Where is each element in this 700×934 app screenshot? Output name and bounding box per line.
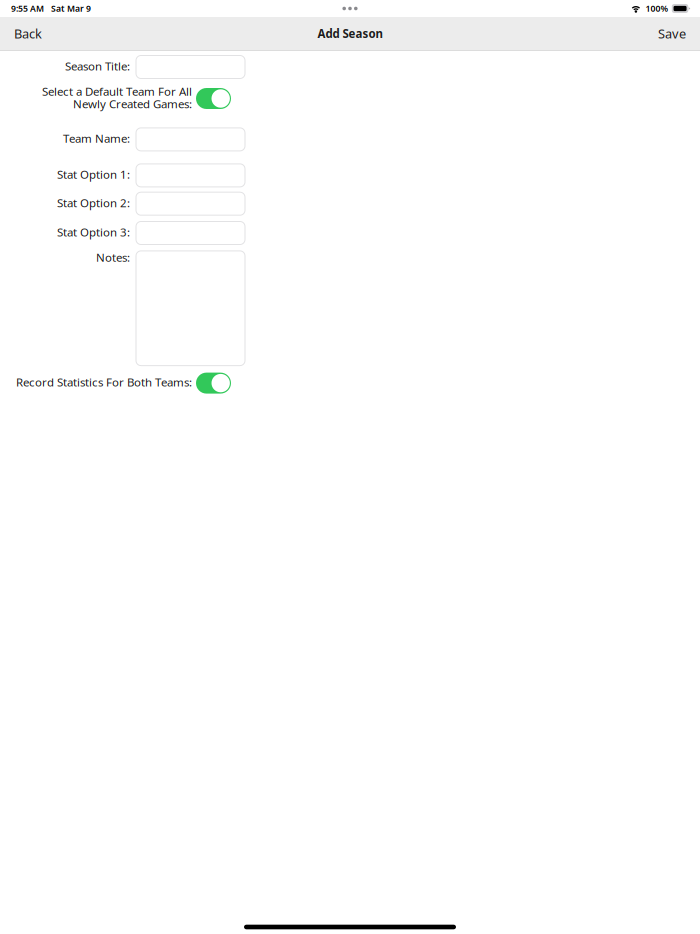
button[interactable]: Select a Default Team For All Newly Crea… (196, 88, 231, 109)
staticText: Notes: (96, 249, 130, 265)
button[interactable]: Save (626, 17, 700, 50)
staticText: Stat Option 3: (57, 224, 130, 240)
button[interactable]: Stat Option 2: (136, 192, 245, 215)
button[interactable]: Back (0, 17, 74, 50)
button[interactable]: Team Name: (136, 128, 245, 151)
staticText: Stat Option 1: (57, 167, 130, 182)
staticText: Stat Option 2: (57, 195, 130, 210)
staticText: Newly Created Games: (73, 96, 192, 111)
button[interactable]: Stat Option 1: (136, 164, 245, 187)
button[interactable]: Notes: (136, 251, 245, 366)
staticText: Season Title: (65, 58, 130, 74)
button[interactable]: Record Statistics For Both Teams (196, 373, 231, 394)
staticText: Team Name: (63, 131, 130, 146)
staticText: 9:55 AM (11, 3, 44, 14)
staticText: Back (14, 25, 42, 42)
staticText: Sat Mar 9 (51, 3, 91, 14)
staticText: Select a Default Team For All (42, 83, 192, 99)
staticText: Save (658, 25, 686, 42)
staticText: 100% (645, 3, 668, 14)
staticText: Record Statistics For Both Teams: (16, 374, 192, 390)
staticText: Add Season (317, 26, 382, 41)
